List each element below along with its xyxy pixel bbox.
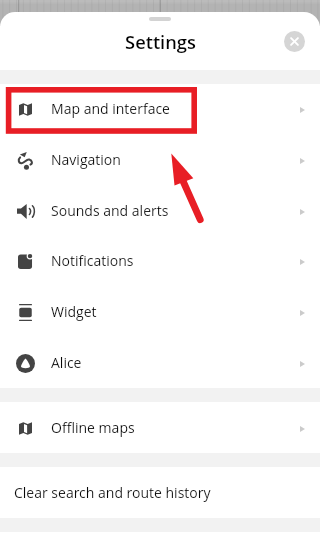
- staticText: Alice: [51, 353, 82, 372]
- staticText: Sounds and alerts: [51, 201, 169, 220]
- button[interactable]: Close: [284, 31, 305, 52]
- staticText: Offline maps: [51, 418, 135, 437]
- button[interactable]: Map and interface: [0, 84, 320, 135]
- button[interactable]: Sounds and alerts: [0, 186, 320, 237]
- staticText: Clear search and route history: [14, 483, 211, 502]
- staticText: Settings: [125, 29, 196, 54]
- button[interactable]: Clear search and route history: [0, 467, 320, 518]
- staticText: Navigation: [51, 150, 121, 169]
- staticText: Map and interface: [51, 99, 170, 118]
- button[interactable]: Widget: [0, 287, 320, 338]
- staticText: Notifications: [51, 251, 134, 270]
- button[interactable]: Navigation: [0, 135, 320, 186]
- button[interactable]: Alice: [0, 338, 320, 389]
- button[interactable]: Offline maps: [0, 403, 320, 454]
- button[interactable]: Notifications: [0, 236, 320, 287]
- staticText: Widget: [51, 302, 97, 321]
